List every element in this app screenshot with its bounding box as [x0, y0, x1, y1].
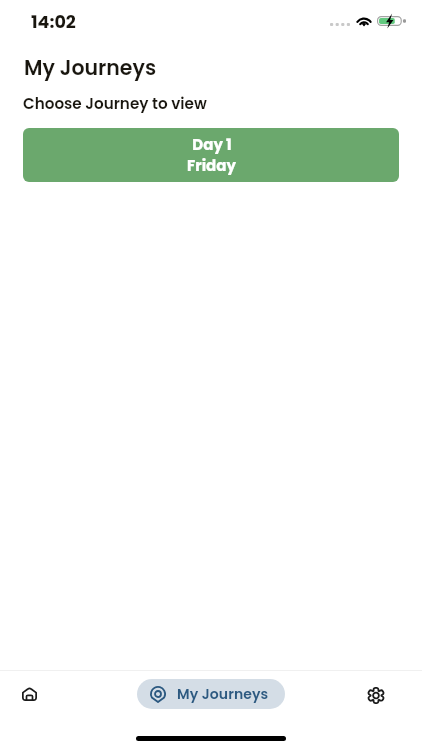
- button[interactable]: Settings: [356, 675, 396, 715]
- staticText: My Journeys: [177, 684, 269, 704]
- button[interactable]: My Journeys: [137, 679, 285, 709]
- staticText: Friday: [187, 155, 236, 176]
- staticText: Day 1: [192, 134, 232, 155]
- staticText: Choose Journey to view: [23, 93, 207, 114]
- button[interactable]: Day 1: [23, 128, 399, 182]
- staticText: My Journeys: [24, 53, 157, 82]
- button[interactable]: Home: [9, 674, 49, 714]
- staticText: 14:02: [31, 10, 76, 35]
